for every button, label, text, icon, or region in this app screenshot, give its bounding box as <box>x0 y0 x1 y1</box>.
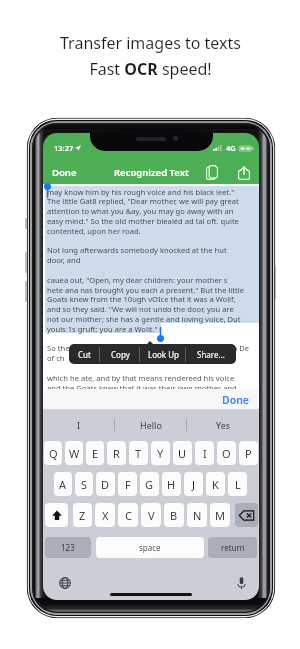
staticText: 13:27 <box>54 143 74 153</box>
staticText: U <box>178 446 187 461</box>
button[interactable]: Share… <box>186 344 236 364</box>
staticText: R <box>113 446 120 461</box>
button[interactable]: U <box>173 441 192 465</box>
button[interactable]: Switch keyboard <box>56 574 74 592</box>
staticText: Share… <box>197 349 225 360</box>
staticText: P <box>245 446 252 461</box>
button[interactable]: Backspace <box>235 503 258 527</box>
button[interactable]: J <box>184 472 203 496</box>
staticText: K <box>212 477 219 492</box>
button[interactable]: B <box>164 503 184 527</box>
button[interactable]: C <box>118 503 138 527</box>
button[interactable]: Look Up <box>140 344 186 364</box>
staticText: I <box>77 419 81 431</box>
button[interactable]: S <box>75 472 93 496</box>
staticText: attention to what you &ay, you may go aw… <box>47 206 234 216</box>
button[interactable]: E <box>86 441 104 465</box>
staticText: space <box>139 542 161 553</box>
button[interactable]: H <box>162 472 181 496</box>
button[interactable]: Hello <box>115 409 187 441</box>
button[interactable]: Shift <box>45 503 68 527</box>
staticText: Cut <box>78 349 91 360</box>
button[interactable]: Y <box>151 441 170 465</box>
staticText: Hello <box>140 419 162 431</box>
staticText: cauea out, "Open, my dear children: your… <box>47 275 228 285</box>
staticText: Yes <box>216 419 231 431</box>
button[interactable]: Z <box>73 503 92 527</box>
button[interactable]: return <box>208 537 257 558</box>
staticText: which he ate, and by that means renderee… <box>47 373 235 383</box>
staticText: D <box>101 477 110 492</box>
button[interactable]: Copy <box>100 344 140 364</box>
staticText: O <box>222 446 231 461</box>
button[interactable]: A <box>54 472 72 496</box>
button[interactable]: Cut <box>69 344 100 364</box>
button[interactable]: space <box>96 537 204 558</box>
button[interactable]: Q <box>44 441 62 465</box>
button[interactable]: W <box>65 441 83 465</box>
button[interactable]: I <box>195 441 214 465</box>
staticText: Z <box>79 508 86 523</box>
staticText: Copy <box>111 349 130 360</box>
button[interactable]: 123 <box>45 537 91 558</box>
button[interactable]: G <box>140 472 159 496</box>
staticText: easy mind." So the old mother blealéd ad… <box>47 216 239 226</box>
staticText: B <box>170 508 178 523</box>
button[interactable]: R <box>107 441 126 465</box>
button[interactable]: Share <box>236 162 252 183</box>
staticText: G <box>145 477 154 492</box>
staticText: So the Wolf went away to a shopkeeper an… <box>47 343 249 353</box>
staticText: Not long afterwards somebody knocked at … <box>47 245 227 255</box>
button[interactable]: P <box>239 441 258 465</box>
staticText: Q <box>49 446 58 461</box>
button[interactable]: L <box>228 472 247 496</box>
button[interactable]: V <box>141 503 161 527</box>
staticText: Y <box>157 446 164 461</box>
staticText: I <box>203 446 207 461</box>
button[interactable]: T <box>129 441 148 465</box>
button[interactable]: I <box>43 409 115 441</box>
button[interactable]: N <box>187 503 207 527</box>
staticText: Done <box>52 166 77 179</box>
staticText: N <box>193 508 202 523</box>
staticText: contented, upon her road. <box>47 226 141 236</box>
button[interactable]: Done <box>220 390 252 410</box>
staticText: Look Up <box>148 349 179 360</box>
staticText: door, and <box>47 255 81 265</box>
button[interactable]: X <box>95 503 115 527</box>
button[interactable]: K <box>206 472 225 496</box>
staticText: and so they said. "We will not undo the … <box>47 304 234 314</box>
staticText: H <box>167 477 176 492</box>
staticText: hete ana nas brought you each a present.… <box>47 285 245 295</box>
staticText: not our mother; she has a gentle and lov… <box>47 314 241 324</box>
other: Shift <box>52 510 62 521</box>
button[interactable]: Done <box>50 162 79 183</box>
other: Backspace <box>239 510 254 521</box>
staticText: of ch <box>47 353 65 363</box>
staticText: Recognized Text <box>114 166 189 179</box>
staticText: J <box>192 477 196 492</box>
button[interactable]: O <box>217 441 236 465</box>
staticText: return <box>221 542 245 553</box>
staticText: T <box>135 446 142 461</box>
staticText: and the Goats knew that it was their own… <box>47 383 237 393</box>
staticText: L <box>235 477 241 492</box>
staticText: 4G <box>226 143 236 153</box>
staticText: E <box>92 446 99 461</box>
staticText: Fast OCR speed! <box>89 58 212 80</box>
staticText: A <box>59 477 67 492</box>
staticText: Goats knew from the 10ugh vOIce that it … <box>47 294 236 304</box>
button[interactable]: F <box>118 472 137 496</box>
button[interactable]: D <box>96 472 115 496</box>
staticText: Done <box>222 393 250 407</box>
staticText: V <box>148 508 155 523</box>
staticText: S <box>81 477 88 492</box>
staticText: F <box>125 477 131 492</box>
button[interactable]: Yes <box>187 409 259 441</box>
staticText: C <box>125 508 132 523</box>
staticText: The little Gat8 replied, "Dear mother, w… <box>47 196 239 206</box>
staticText: X <box>102 508 109 523</box>
button[interactable]: M <box>210 503 230 527</box>
button[interactable]: Copy <box>204 162 220 183</box>
button[interactable]: Dictate <box>232 574 250 592</box>
